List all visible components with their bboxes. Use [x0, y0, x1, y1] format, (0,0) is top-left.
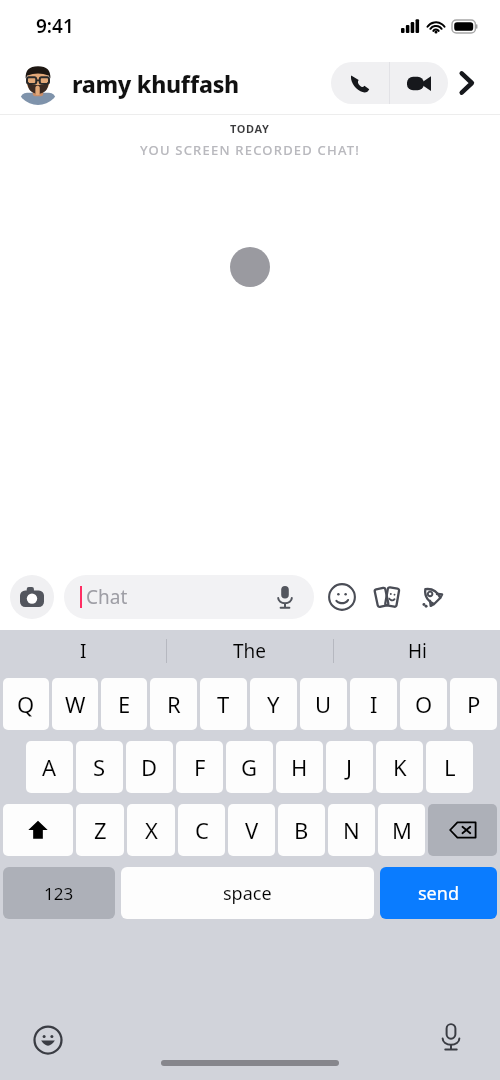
staticText: Hi: [408, 638, 427, 664]
staticText: X: [145, 815, 158, 845]
button[interactable]: Rocket: [414, 580, 448, 614]
staticText: V: [245, 815, 259, 845]
button[interactable]: K: [376, 741, 423, 793]
button[interactable]: Y: [250, 678, 297, 730]
button[interactable]: E: [101, 678, 147, 730]
button[interactable]: T: [200, 678, 247, 730]
button[interactable]: Emoji keyboard: [32, 1024, 64, 1056]
button[interactable]: L: [426, 741, 473, 793]
button[interactable]: ramy khuffash: [72, 68, 331, 99]
staticText: Y: [267, 689, 280, 719]
button[interactable]: D: [126, 741, 173, 793]
button[interactable]: Stickers: [370, 580, 404, 614]
staticText: S: [93, 752, 106, 782]
staticText: YOU SCREEN RECORDED CHAT!: [140, 141, 360, 159]
button[interactable]: Q: [3, 678, 49, 730]
button[interactable]: send: [380, 867, 497, 919]
button[interactable]: Camera: [10, 575, 54, 619]
staticText: W: [65, 689, 86, 719]
staticText: The: [233, 638, 267, 664]
staticText: F: [194, 752, 206, 782]
staticText: K: [393, 752, 407, 782]
staticText: B: [294, 815, 309, 845]
button[interactable]: Dictation: [436, 1022, 466, 1052]
button[interactable]: Voice call: [331, 62, 389, 104]
staticText: send: [418, 881, 459, 906]
button[interactable]: R: [150, 678, 197, 730]
staticText: Chat: [86, 584, 272, 610]
staticText: 123: [44, 882, 74, 905]
button[interactable]: Message: [230, 247, 270, 287]
staticText: R: [167, 689, 181, 719]
button[interactable]: Shift: [3, 804, 73, 856]
staticText: I: [370, 689, 378, 719]
button[interactable]: N: [328, 804, 375, 856]
button[interactable]: U: [300, 678, 347, 730]
staticText: J: [346, 752, 353, 782]
button[interactable]: Chat: [64, 575, 314, 619]
button[interactable]: J: [326, 741, 373, 793]
staticText: G: [241, 752, 258, 782]
staticText: T: [217, 689, 230, 719]
staticText: Z: [94, 815, 107, 845]
button[interactable]: G: [226, 741, 273, 793]
staticText: N: [343, 815, 360, 845]
button[interactable]: O: [400, 678, 447, 730]
staticText: space: [223, 881, 272, 906]
staticText: M: [392, 815, 412, 845]
staticText: A: [42, 752, 57, 782]
button[interactable]: I: [0, 630, 166, 672]
button[interactable]: C: [178, 804, 225, 856]
button[interactable]: I: [350, 678, 397, 730]
staticText: 9:41: [36, 13, 74, 39]
staticText: H: [291, 752, 308, 782]
button[interactable]: X: [127, 804, 175, 856]
button[interactable]: space: [121, 867, 374, 919]
button[interactable]: Backspace: [428, 804, 497, 856]
staticText: E: [118, 689, 131, 719]
button[interactable]: Video call: [390, 62, 448, 104]
button[interactable]: Profile avatar: [16, 61, 60, 105]
staticText: O: [415, 689, 433, 719]
staticText: I: [80, 638, 87, 664]
button[interactable]: More: [448, 62, 484, 104]
staticText: U: [315, 689, 332, 719]
button[interactable]: 123: [3, 867, 115, 919]
staticText: L: [444, 752, 456, 782]
button[interactable]: Voice message: [272, 584, 298, 610]
button[interactable]: Z: [76, 804, 124, 856]
button[interactable]: Emoji: [324, 579, 360, 615]
button[interactable]: The: [167, 630, 333, 672]
button[interactable]: P: [450, 678, 497, 730]
staticText: P: [467, 689, 481, 719]
staticText: C: [195, 815, 209, 845]
button[interactable]: H: [276, 741, 323, 793]
button[interactable]: F: [176, 741, 223, 793]
staticText: Q: [17, 689, 35, 719]
button[interactable]: S: [76, 741, 123, 793]
button[interactable]: V: [228, 804, 275, 856]
button[interactable]: Hi: [334, 630, 500, 672]
staticText: TODAY: [230, 121, 270, 136]
button[interactable]: B: [278, 804, 325, 856]
button[interactable]: A: [26, 741, 73, 793]
button[interactable]: M: [378, 804, 425, 856]
button[interactable]: W: [52, 678, 98, 730]
staticText: D: [141, 752, 158, 782]
